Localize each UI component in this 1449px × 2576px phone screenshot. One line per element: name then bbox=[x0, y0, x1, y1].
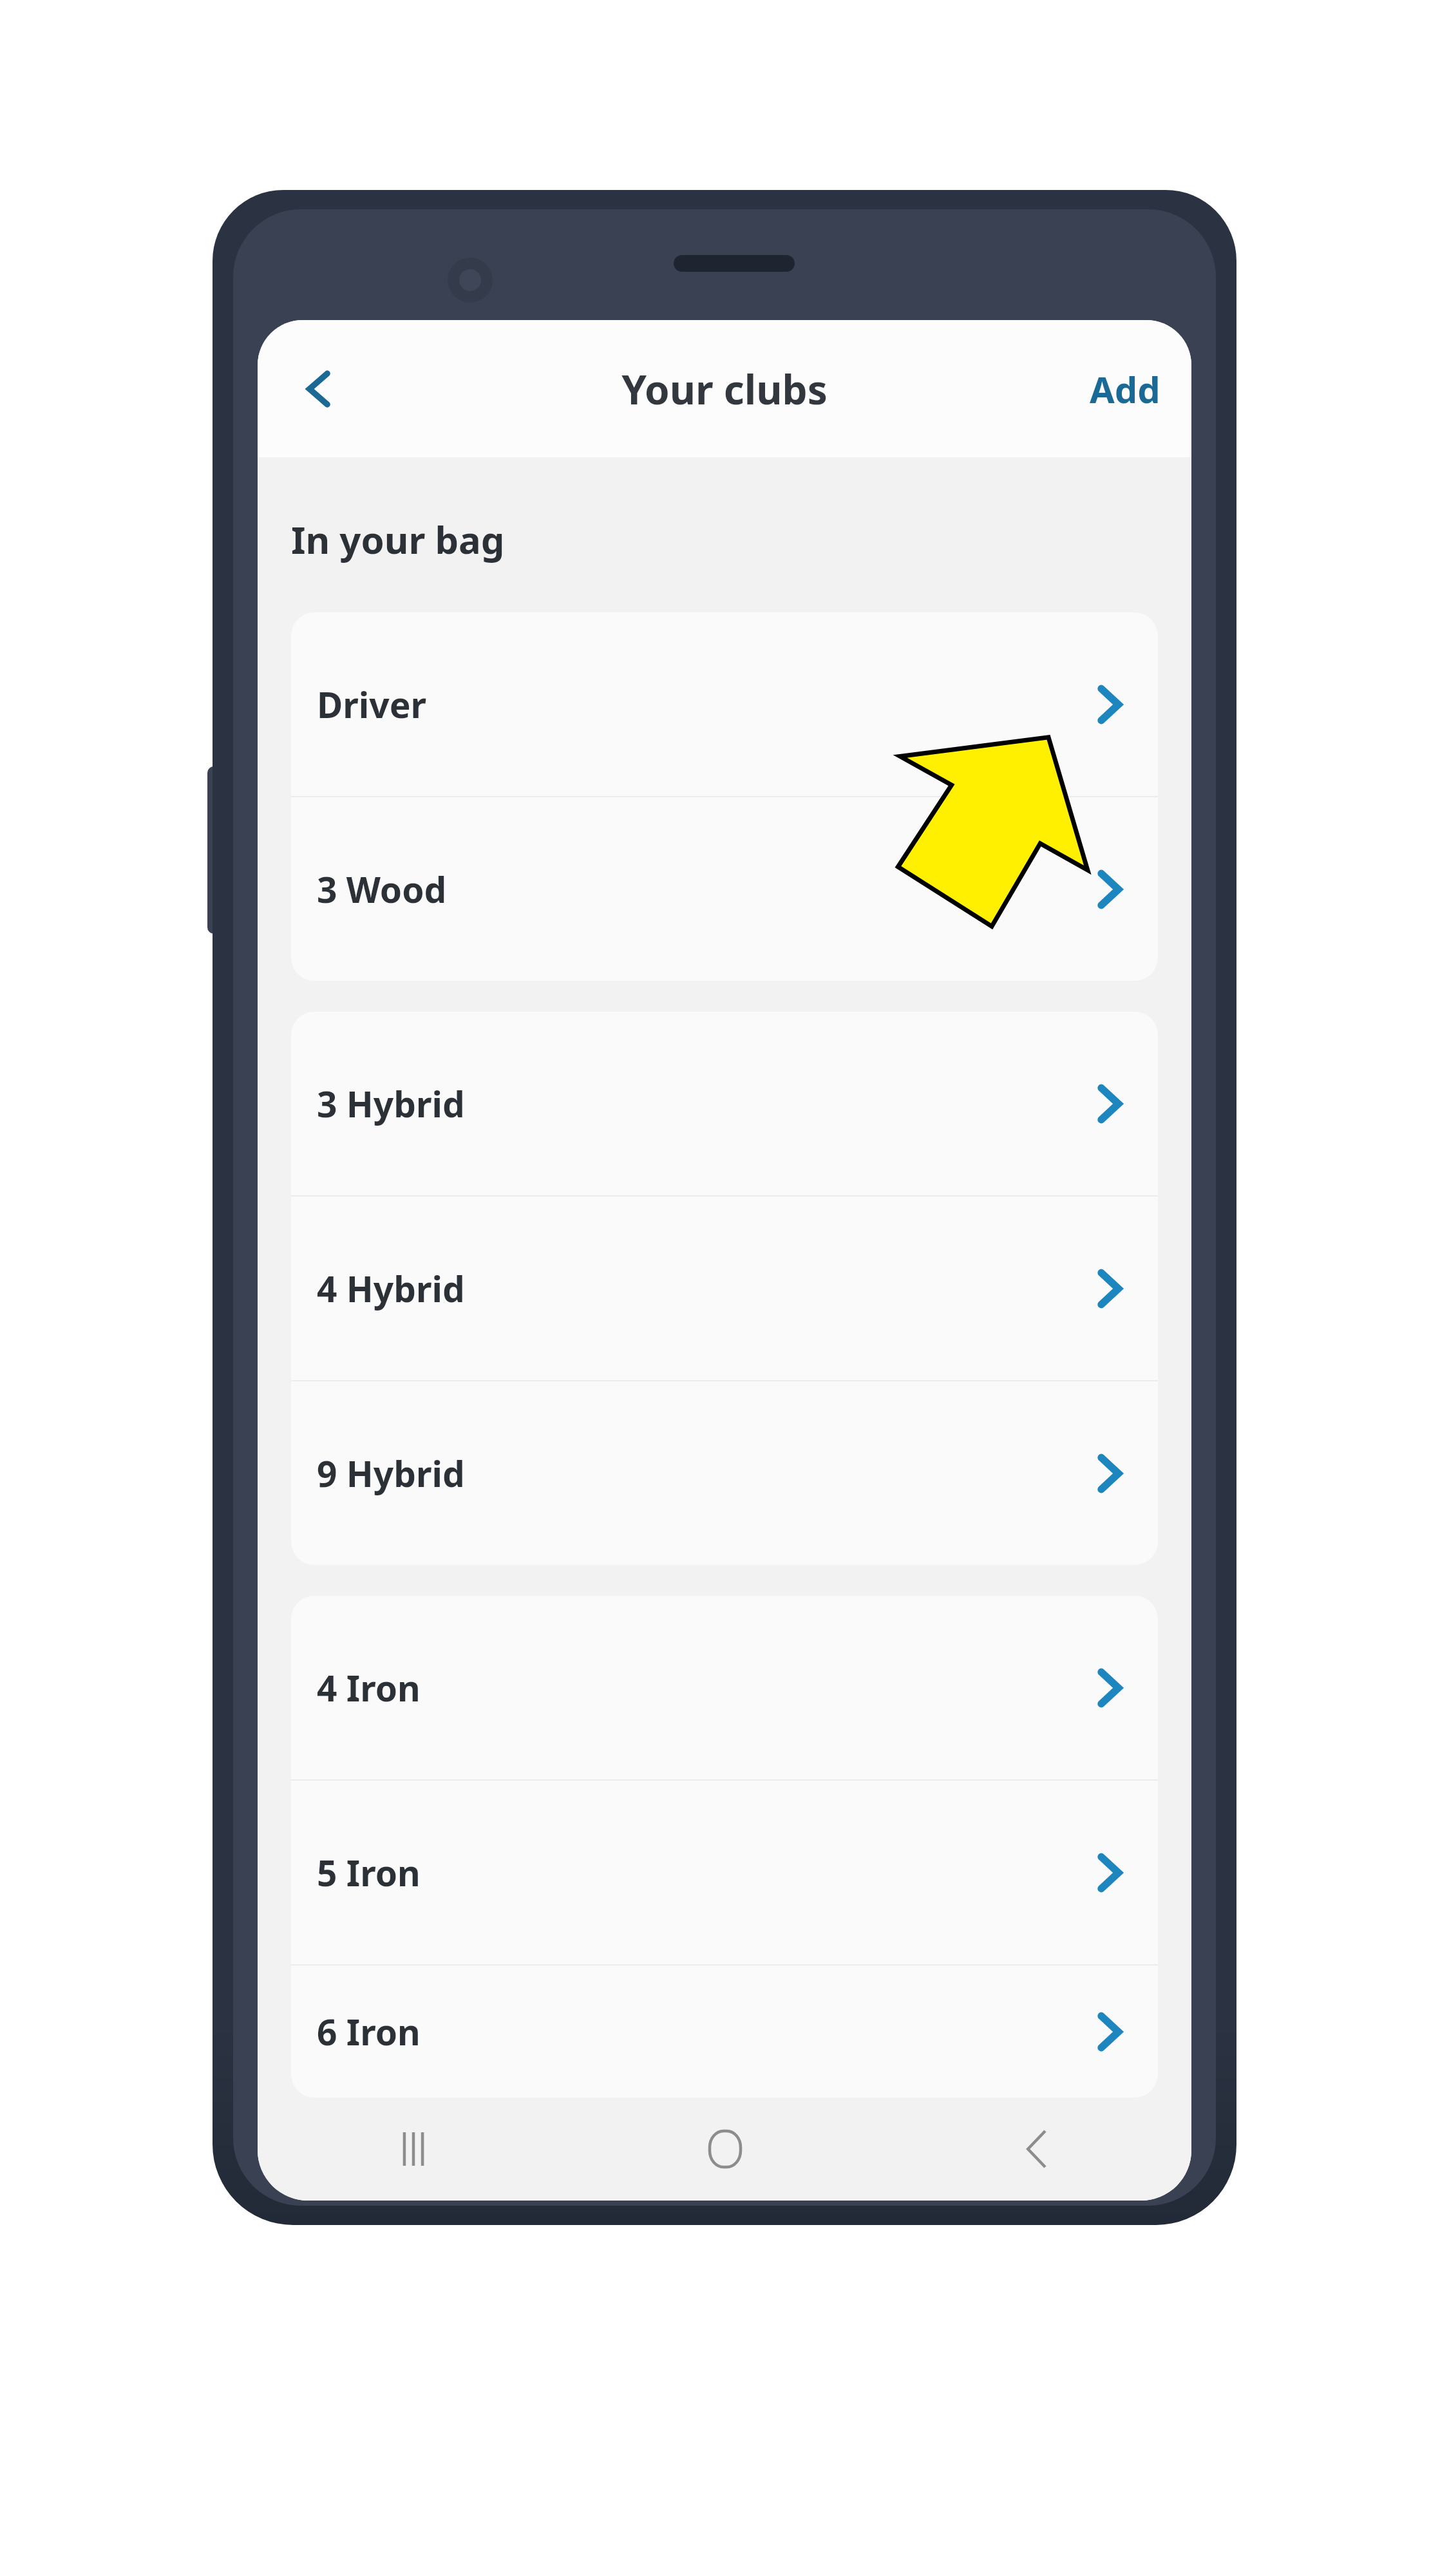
button[interactable]: Home bbox=[569, 2098, 880, 2201]
staticText: 4 Hybrid bbox=[317, 1264, 1087, 1312]
staticText: 5 Iron bbox=[317, 1848, 1087, 1897]
button[interactable]: Add bbox=[1072, 350, 1179, 428]
button[interactable]: 4 Hybrid bbox=[291, 1197, 1158, 1380]
staticText: 6 Iron bbox=[317, 2007, 1087, 2056]
staticText: In your bag bbox=[291, 514, 505, 565]
staticText: 3 Hybrid bbox=[317, 1079, 1087, 1128]
button[interactable]: Back bbox=[880, 2098, 1191, 2201]
staticText: 3 Wood bbox=[317, 865, 1087, 913]
button[interactable]: Recent apps bbox=[258, 2098, 569, 2201]
button[interactable]: Back bbox=[277, 347, 361, 431]
staticText: Your clubs bbox=[621, 362, 828, 416]
staticText: Driver bbox=[317, 680, 1087, 728]
button[interactable]: 6 Iron bbox=[291, 1965, 1158, 2098]
staticText: 9 Hybrid bbox=[317, 1449, 1087, 1497]
button[interactable]: 9 Hybrid bbox=[291, 1381, 1158, 1565]
button[interactable]: Driver bbox=[291, 612, 1158, 796]
staticText: 4 Iron bbox=[317, 1663, 1087, 1712]
button[interactable]: 3 Wood bbox=[291, 797, 1158, 981]
button[interactable]: 5 Iron bbox=[291, 1781, 1158, 1964]
button[interactable]: 3 Hybrid bbox=[291, 1012, 1158, 1195]
staticText: Add bbox=[1090, 365, 1160, 413]
button[interactable]: 4 Iron bbox=[291, 1596, 1158, 1779]
